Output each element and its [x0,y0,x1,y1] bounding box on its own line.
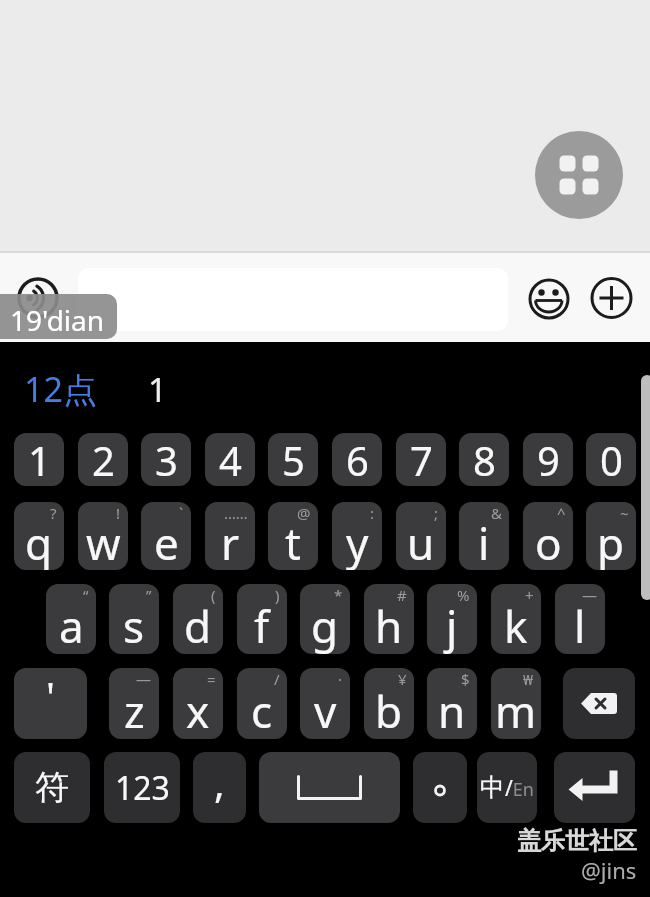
staticText: ₩ [523,669,534,689]
staticText: ? [50,503,57,523]
staticText: 1 [28,433,51,486]
staticText: q [25,513,53,570]
staticText: 符 [35,766,69,809]
staticText: e [154,513,179,570]
button[interactable] [413,752,467,823]
staticText: 5 [282,433,305,486]
button[interactable]: n [427,668,477,739]
staticText: @jins [581,855,637,885]
staticText: ” [146,585,152,605]
button[interactable]: 中/En [477,752,537,823]
staticText: ; [434,503,439,523]
staticText: 123 [115,766,170,810]
button[interactable] [591,277,633,319]
button[interactable]: h [364,584,414,654]
staticText: d [184,596,212,654]
staticText: c [251,681,273,739]
staticText: & [491,503,502,523]
button[interactable]: x [173,668,223,739]
staticText: — [582,585,598,605]
staticText: — [136,669,152,689]
button[interactable]: p [586,502,636,570]
staticText: $ [461,669,470,689]
button[interactable] [554,752,635,823]
button[interactable]: 2 [78,433,128,486]
button[interactable]: w [78,502,128,570]
staticText: · [338,669,343,689]
button[interactable]: b [364,668,414,739]
staticText: = [207,669,216,689]
button[interactable]: v [300,668,350,739]
button[interactable]: q [14,502,64,570]
button[interactable]: c [237,668,287,739]
button[interactable]: d [173,584,223,654]
staticText: r [221,513,240,570]
button[interactable]: i [459,502,509,570]
button[interactable]: 1 [14,433,64,486]
staticText: ` [179,503,184,523]
button[interactable]: 9 [523,433,573,486]
staticText: @ [297,503,311,523]
button[interactable] [17,277,59,319]
button[interactable]: j [427,584,477,654]
staticText: , [214,755,225,809]
staticText: “ [83,585,89,605]
staticText: 0 [600,433,623,486]
button[interactable]: 5 [268,433,318,486]
staticText: u [407,513,435,570]
staticText: # [397,585,407,605]
button[interactable]: f [237,584,287,654]
staticText: g [311,596,339,654]
button[interactable] [78,268,508,331]
button[interactable]: r [205,502,255,570]
button[interactable]: g [300,584,350,654]
staticText: k [504,596,528,654]
staticText: ¥ [398,669,407,689]
button[interactable]: u [396,502,446,570]
button[interactable]: e [141,502,191,570]
button[interactable]: a [46,584,96,654]
staticText: + [525,585,534,605]
button[interactable]: , [193,752,246,823]
button[interactable] [563,668,635,739]
button[interactable]: 0 [586,433,636,486]
staticText: m [495,681,537,739]
button[interactable]: z [109,668,159,739]
button[interactable]: o [523,502,573,570]
button[interactable]: 8 [459,433,509,486]
staticText: o [535,513,562,570]
button[interactable]: ' [14,668,87,739]
staticText: 12点 [24,366,97,412]
button[interactable]: s [109,584,159,654]
staticText: 8 [473,433,496,486]
button[interactable]: m [491,668,541,739]
button[interactable]: l [555,584,605,654]
staticText: ~ [620,503,629,523]
staticText: t [285,513,301,570]
button[interactable]: 4 [205,433,255,486]
button[interactable]: 6 [332,433,382,486]
staticText: s [123,596,145,654]
staticText: 7 [410,433,433,486]
button[interactable] [528,278,570,320]
staticText: y [346,513,369,570]
button[interactable] [259,752,400,823]
staticText: ' [46,669,55,723]
button[interactable]: 7 [396,433,446,486]
staticText: ) [275,585,280,605]
button[interactable]: 3 [141,433,191,486]
staticText: 中/En [480,772,534,803]
button[interactable]: k [491,584,541,654]
staticText: 3 [155,433,178,486]
button[interactable]: t [268,502,318,570]
staticText: 9 [537,433,560,486]
staticText: * [334,585,343,605]
staticText: 2 [92,433,115,486]
staticText: 6 [346,433,369,486]
button[interactable]: y [332,502,382,570]
button[interactable] [535,131,623,219]
staticText: 4 [219,433,242,486]
button[interactable]: 123 [104,752,180,823]
button[interactable]: 符 [14,752,90,823]
staticText: ^ [557,503,566,523]
